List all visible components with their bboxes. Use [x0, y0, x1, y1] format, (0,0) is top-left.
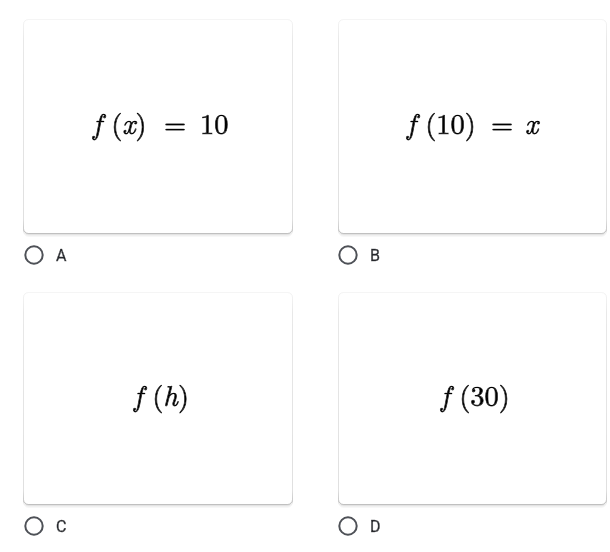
button[interactable]: Answer B [338, 19, 607, 234]
staticText: x [525, 102, 539, 142]
button[interactable]: Answer A [23, 19, 293, 234]
staticText: f (x) [93, 102, 147, 142]
staticText: B [370, 246, 380, 265]
button[interactable]: Select option D [337, 515, 381, 537]
staticText: A [56, 246, 67, 265]
button[interactable]: Select option A [23, 244, 67, 266]
staticText: x [525, 102, 539, 142]
staticText: f (h) [134, 374, 189, 414]
button[interactable]: Answer D [338, 292, 607, 505]
staticText: = [491, 102, 514, 142]
staticText: B [370, 246, 380, 265]
staticText: C [56, 517, 67, 536]
staticText: = [164, 102, 187, 142]
button[interactable]: Select option B [337, 244, 380, 266]
staticText: 10 [200, 102, 229, 142]
staticText: 10 [200, 102, 229, 142]
button[interactable]: Answer C [23, 292, 293, 505]
staticText: = [491, 102, 514, 142]
button[interactable]: Select option C [23, 515, 67, 537]
staticText: f (30) [441, 374, 510, 414]
staticText: f (h) [134, 374, 189, 414]
staticText: = [164, 102, 187, 142]
staticText: D [370, 517, 381, 536]
staticText: f (10) [407, 102, 476, 142]
staticText: D [370, 517, 381, 536]
staticText: C [56, 517, 67, 536]
staticText: f (10) [407, 102, 476, 142]
staticText: f (x) [93, 102, 147, 142]
staticText: f (30) [441, 374, 510, 414]
staticText: A [56, 246, 67, 265]
